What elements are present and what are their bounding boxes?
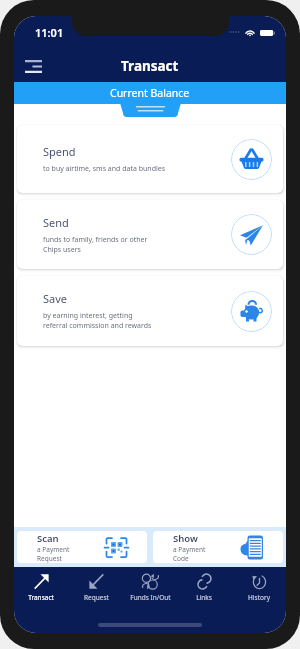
staticText: History	[248, 593, 270, 602]
staticText: funds to family, friends or other	[43, 235, 148, 245]
button[interactable]: Show	[153, 531, 283, 563]
staticText: a Payment	[37, 545, 70, 554]
staticText: Code	[173, 554, 189, 563]
staticText: Transact	[121, 57, 179, 75]
staticText: referral commission and rewards	[43, 321, 152, 331]
button[interactable]: History	[232, 573, 286, 602]
button[interactable]: Send	[17, 200, 283, 269]
staticText: Show	[173, 532, 198, 545]
staticText: Current Balance	[110, 86, 190, 100]
staticText: Request	[37, 554, 62, 563]
staticText: 11:01	[35, 25, 64, 40]
button[interactable]: Request	[69, 573, 123, 602]
button[interactable]: Menu	[18, 51, 48, 81]
button[interactable]: Transact	[14, 573, 68, 602]
button[interactable]: Funds In/Out	[123, 573, 177, 602]
staticText: Spend	[43, 144, 76, 159]
button[interactable]: Expand balance	[120, 103, 181, 117]
staticText: Request	[84, 593, 109, 602]
staticText: Save	[43, 291, 68, 306]
staticText: to buy airtime, sms and data bundles	[43, 164, 166, 174]
staticText: Send	[43, 215, 69, 230]
staticText: Scan	[37, 532, 59, 545]
staticText: Funds In/Out	[130, 593, 171, 602]
staticText: Transact	[28, 593, 54, 602]
staticText: Links	[196, 593, 212, 602]
staticText: Chips users	[43, 245, 81, 255]
button[interactable]: Save	[17, 276, 283, 346]
button[interactable]: Scan	[17, 531, 147, 563]
button[interactable]: Links	[177, 573, 231, 602]
staticText: a Payment	[173, 545, 206, 554]
staticText: by earning interest, getting	[43, 311, 133, 321]
button[interactable]: Spend	[17, 125, 283, 193]
